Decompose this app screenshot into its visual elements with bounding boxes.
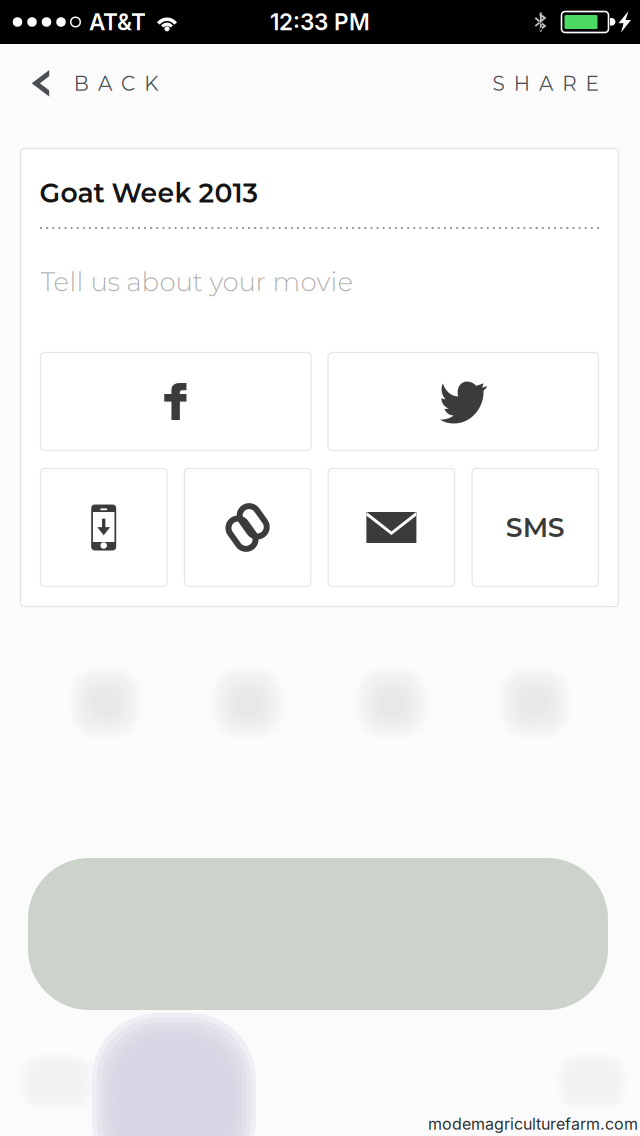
button[interactable]: B bbox=[0, 40, 180, 126]
button[interactable]: Share by email bbox=[328, 468, 455, 586]
staticText: A bbox=[98, 71, 112, 96]
button[interactable]: Share on Facebook bbox=[40, 352, 311, 450]
staticText: A bbox=[539, 71, 553, 96]
staticText: K bbox=[144, 71, 158, 96]
staticText: B bbox=[74, 71, 89, 96]
button[interactable]: Save to device bbox=[40, 468, 167, 586]
staticText: H bbox=[514, 71, 530, 96]
button[interactable]: Share by SMS bbox=[472, 468, 598, 586]
staticText: E bbox=[585, 71, 598, 96]
staticText: SMS bbox=[506, 511, 565, 544]
staticText: AT&T bbox=[89, 8, 146, 36]
button[interactable]: Share on Twitter bbox=[328, 352, 598, 450]
staticText: S bbox=[493, 71, 505, 96]
staticText: 12:33 PM bbox=[270, 8, 370, 36]
staticText: C bbox=[121, 71, 135, 96]
staticText: modemagriculturefarm.com bbox=[428, 1114, 638, 1134]
button[interactable]: Copy link bbox=[184, 468, 311, 586]
button[interactable]: S bbox=[469, 40, 640, 126]
staticText: Goat Week 2013 bbox=[39, 177, 258, 209]
staticText: Tell us about your movie bbox=[40, 266, 353, 298]
staticText: R bbox=[562, 71, 576, 96]
